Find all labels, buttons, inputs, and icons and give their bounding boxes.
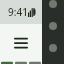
button[interactable]: Stats [14,62,28,64]
staticText: 9:41 [8,5,28,19]
button[interactable]: You [28,62,42,64]
button[interactable]: Side panel [42,0,64,64]
button[interactable]: Home [0,62,14,64]
button[interactable]: Menu [8,30,34,56]
